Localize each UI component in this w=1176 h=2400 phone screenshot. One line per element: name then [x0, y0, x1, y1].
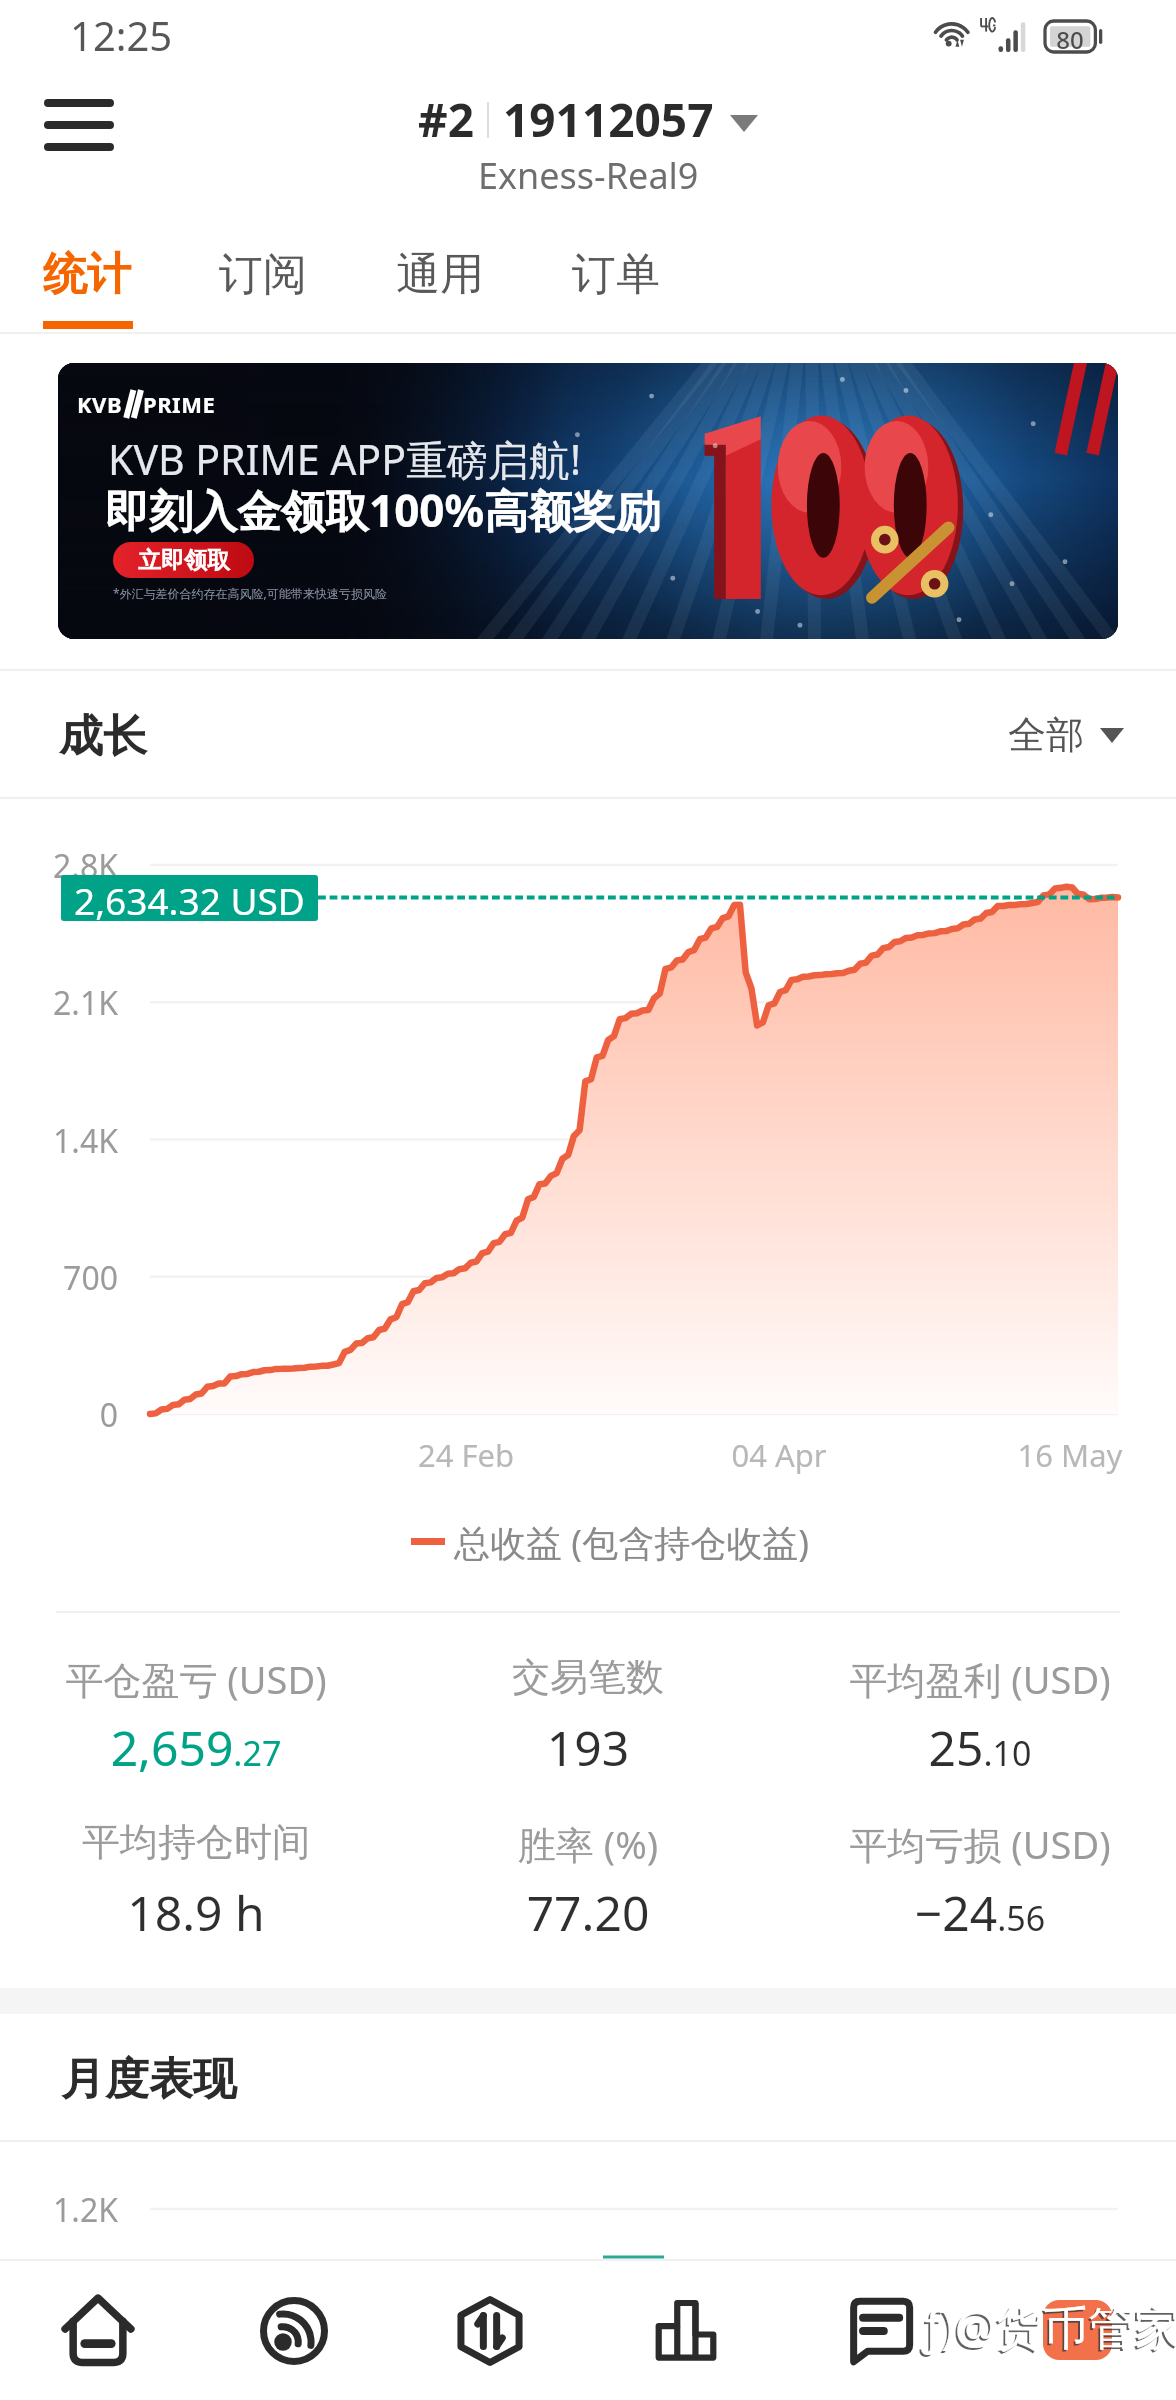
staticText: 16 May [960, 1434, 1176, 1476]
staticText: 2,634.32 USD [74, 875, 305, 921]
staticText: 25.10 [784, 1715, 1176, 1780]
staticText: 交易笔数 [392, 1653, 784, 1701]
staticText: 2.1K [0, 981, 118, 1025]
staticText: 全部 [1008, 711, 1084, 759]
staticText: 77.20 [392, 1880, 784, 1945]
staticText: 2.8K [0, 844, 118, 888]
staticText: 平均持仓时间 [0, 1818, 392, 1866]
staticText: PRIME [143, 389, 216, 419]
staticText: #2 [418, 88, 475, 151]
staticText: −24.56 [784, 1880, 1176, 1945]
button[interactable]: Chat [784, 2261, 980, 2400]
button[interactable]: Signals [196, 2261, 392, 2400]
staticText: 80 [1045, 23, 1095, 50]
staticText: 平均盈利 (USD) [784, 1653, 1176, 1705]
button[interactable]: KVB PRIME promotion banner [58, 363, 1118, 639]
button[interactable]: 立即领取 [113, 542, 254, 578]
button[interactable]: Trade [392, 2261, 588, 2400]
staticText: 平仓盈亏 (USD) [0, 1653, 392, 1705]
staticText: Exness-Real9 [478, 151, 699, 200]
staticText: 成长 [59, 709, 147, 764]
staticText: 订单 [572, 247, 660, 302]
staticText: 胜率 (%) [392, 1818, 784, 1870]
staticText: 19112057 [503, 88, 714, 151]
button[interactable]: Statistics [588, 2261, 784, 2400]
staticText: *外汇与差价合约存在高风险,可能带来快速亏损风险 [113, 585, 387, 601]
staticText: 总收益 (包含持仓收益) [454, 1518, 809, 1567]
staticText: 12:25 [70, 8, 173, 62]
staticText: 1.2K [0, 2188, 118, 2232]
staticText: 04 Apr [669, 1434, 889, 1476]
staticText: 平均亏损 (USD) [784, 1818, 1176, 1870]
button[interactable]: 订阅 [201, 247, 325, 345]
button[interactable]: Home [0, 2261, 196, 2400]
staticText: 193 [392, 1715, 784, 1780]
staticText: 立即领取 [138, 546, 230, 575]
staticText: ƒ)@货币管家 [922, 2295, 1176, 2358]
button[interactable]: 订单 [554, 247, 678, 345]
staticText: ƒ)@货币管家 [920, 2297, 1176, 2360]
staticText: 0 [0, 1393, 118, 1437]
button[interactable]: Menu [32, 78, 126, 172]
staticText: 即刻入金领取100%高额奖励 [105, 480, 661, 540]
staticText: 2,659.27 [0, 1715, 392, 1780]
staticText: 订阅 [219, 247, 307, 302]
staticText: 月度表现 [61, 2052, 237, 2107]
button[interactable]: Filter: all [1008, 711, 1124, 759]
button[interactable]: 统计 [25, 247, 149, 345]
staticText: 通用 [396, 247, 484, 302]
button[interactable]: 通用 [378, 247, 502, 345]
staticText: KVB PRIME APP重磅启航! [108, 431, 581, 487]
staticText: 700 [0, 1256, 118, 1300]
staticText: 24 Feb [356, 1434, 576, 1476]
staticText: 18.9 h [0, 1880, 392, 1945]
staticText: 1.4K [0, 1119, 118, 1163]
staticText: KVB [77, 389, 123, 419]
staticText: 统计 [43, 247, 131, 302]
button[interactable]: #2 [412, 88, 764, 151]
